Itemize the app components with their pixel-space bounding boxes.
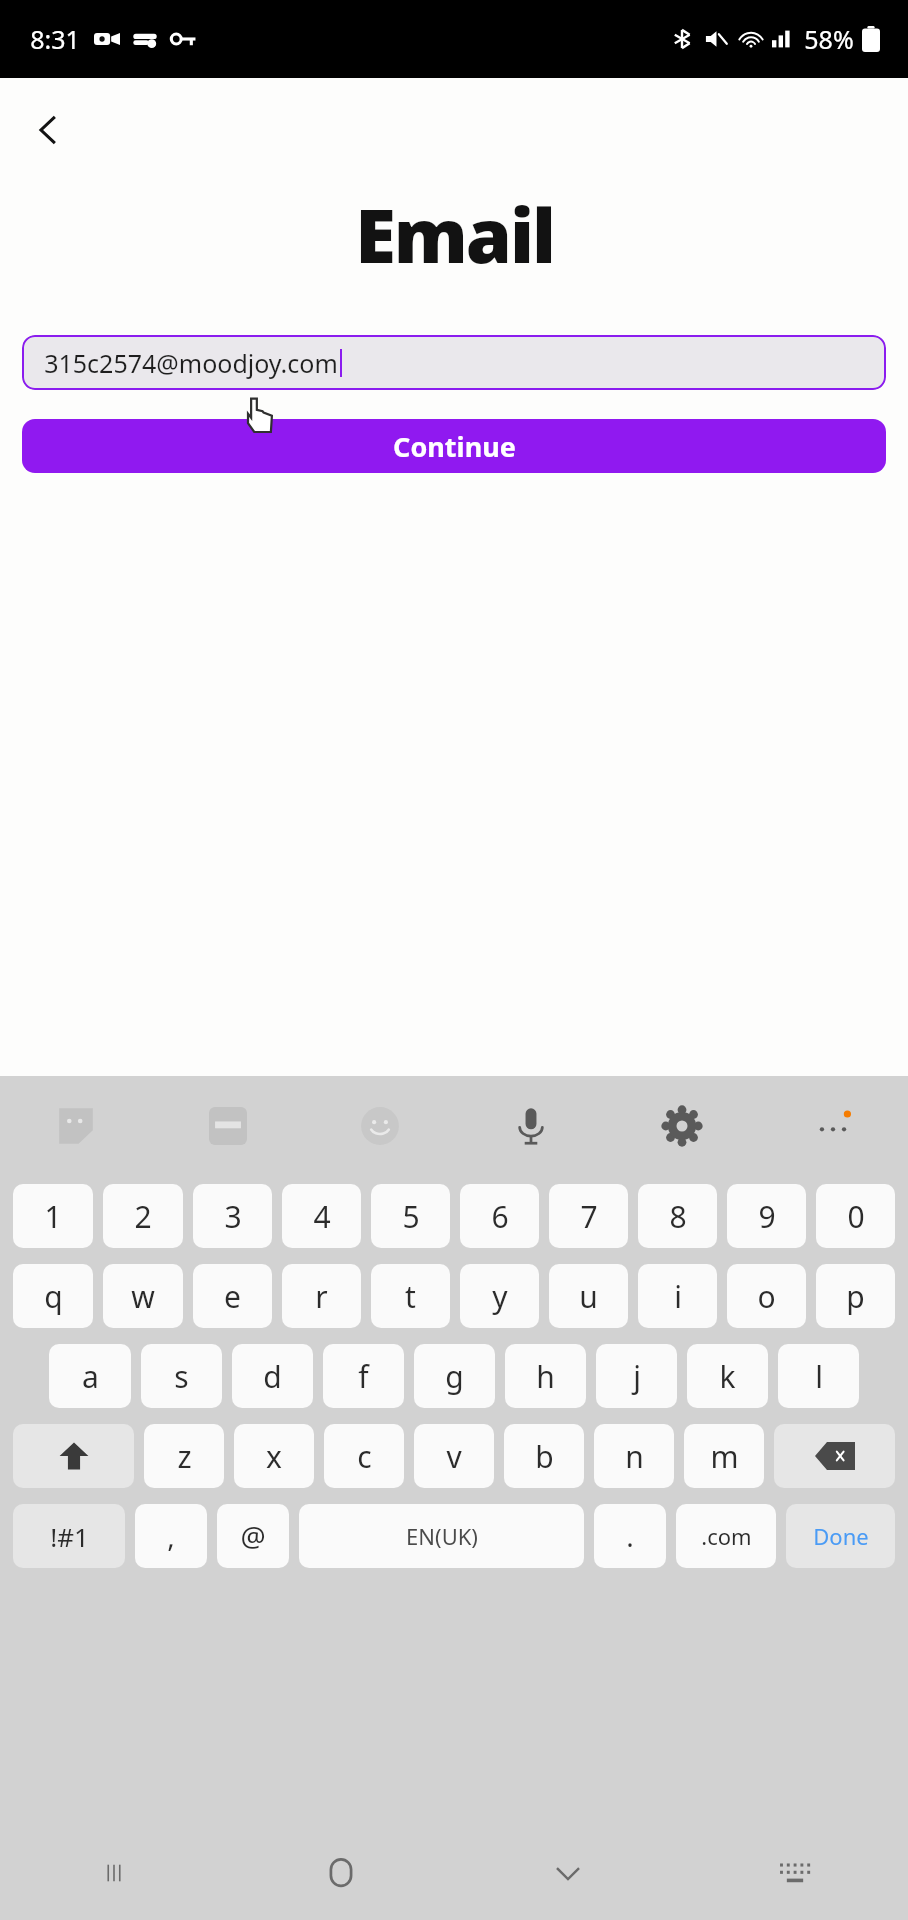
button[interactable]: , [135, 1504, 207, 1568]
staticText: 5 [402, 1196, 420, 1237]
staticText: @ [240, 1517, 266, 1555]
button[interactable]: Backspace [774, 1424, 895, 1488]
staticText: l [815, 1356, 823, 1397]
button[interactable]: j [596, 1344, 677, 1408]
staticText: 2 [134, 1196, 152, 1237]
button[interactable]: h [505, 1344, 586, 1408]
button[interactable]: 315c2574@moodjoy.com [22, 335, 886, 390]
staticText: 0 [847, 1196, 865, 1237]
button[interactable]: r [282, 1264, 361, 1328]
staticText: Continue [393, 428, 516, 465]
staticText: k [719, 1356, 736, 1397]
staticText: c [357, 1436, 372, 1477]
staticText: 58% [804, 22, 854, 56]
button[interactable]: 9 [727, 1184, 806, 1248]
staticText: n [625, 1436, 644, 1477]
staticText: v [446, 1436, 462, 1477]
staticText: z [177, 1436, 192, 1477]
staticText: 6 [491, 1196, 509, 1237]
staticText: 7 [580, 1196, 598, 1237]
button[interactable]: o [727, 1264, 806, 1328]
button[interactable]: 7 [549, 1184, 628, 1248]
staticText: u [579, 1276, 598, 1317]
button[interactable]: f [323, 1344, 404, 1408]
button[interactable]: GIF [152, 1076, 304, 1176]
button[interactable]: m [684, 1424, 764, 1488]
button[interactable]: EN(UK) [299, 1504, 584, 1568]
button[interactable]: Sticker [0, 1076, 152, 1176]
staticText: b [535, 1436, 554, 1477]
staticText: j [633, 1356, 641, 1397]
staticText: 4 [313, 1196, 331, 1237]
button[interactable]: @ [217, 1504, 289, 1568]
button[interactable]: Change keyboard [681, 1826, 908, 1920]
button[interactable]: k [687, 1344, 768, 1408]
button[interactable]: . [594, 1504, 666, 1568]
staticText: EN(UK) [406, 1521, 478, 1551]
button[interactable]: x [234, 1424, 314, 1488]
staticText: 8 [669, 1196, 687, 1237]
button[interactable]: l [778, 1344, 859, 1408]
button[interactable]: z [144, 1424, 224, 1488]
button[interactable]: 5 [371, 1184, 450, 1248]
staticText: f [358, 1356, 369, 1397]
staticText: m [710, 1436, 739, 1477]
button[interactable]: s [141, 1344, 222, 1408]
staticText: y [492, 1276, 508, 1317]
staticText: 8:31 [30, 22, 80, 56]
staticText: w [131, 1276, 155, 1317]
button[interactable]: n [594, 1424, 674, 1488]
button[interactable]: v [414, 1424, 494, 1488]
staticText: e [224, 1276, 241, 1317]
button[interactable]: d [232, 1344, 313, 1408]
staticText: 9 [758, 1196, 776, 1237]
button[interactable]: More options [757, 1076, 908, 1176]
staticText: Done [813, 1521, 869, 1551]
staticText: 1 [44, 1196, 62, 1237]
button[interactable]: g [414, 1344, 495, 1408]
button[interactable]: c [324, 1424, 404, 1488]
button[interactable]: .com [676, 1504, 776, 1568]
button[interactable]: e [193, 1264, 272, 1328]
staticText: , [167, 1517, 175, 1555]
button[interactable]: Recent apps [0, 1826, 227, 1920]
button[interactable]: !#1 [13, 1504, 125, 1568]
button[interactable]: u [549, 1264, 628, 1328]
staticText: !#1 [50, 1519, 89, 1554]
staticText: d [263, 1356, 282, 1397]
button[interactable]: Home [227, 1826, 454, 1920]
button[interactable]: 6 [460, 1184, 539, 1248]
staticText: p [846, 1276, 865, 1317]
button[interactable]: i [638, 1264, 717, 1328]
button[interactable]: 3 [193, 1184, 272, 1248]
button[interactable]: 1 [13, 1184, 93, 1248]
button[interactable]: t [371, 1264, 450, 1328]
staticText: g [445, 1356, 464, 1397]
button[interactable]: a [49, 1344, 131, 1408]
staticText: i [674, 1276, 682, 1317]
button[interactable]: Back [16, 98, 80, 162]
staticText: 315c2574@moodjoy.com [44, 346, 338, 380]
button[interactable]: 8 [638, 1184, 717, 1248]
button[interactable]: Hide keyboard [454, 1826, 681, 1920]
staticText: . [626, 1517, 634, 1555]
button[interactable]: 0 [816, 1184, 895, 1248]
button[interactable]: 4 [282, 1184, 361, 1248]
staticText: r [315, 1276, 328, 1317]
button[interactable]: Continue [22, 419, 886, 473]
button[interactable]: w [103, 1264, 183, 1328]
staticText: Email [355, 184, 554, 285]
button[interactable]: p [816, 1264, 895, 1328]
staticText: a [82, 1356, 99, 1397]
button[interactable]: 2 [103, 1184, 183, 1248]
button[interactable]: y [460, 1264, 539, 1328]
button[interactable]: Keyboard settings [606, 1076, 757, 1176]
staticText: h [536, 1356, 555, 1397]
button[interactable]: Voice input [455, 1076, 606, 1176]
button[interactable]: Done [786, 1504, 895, 1568]
button[interactable]: q [13, 1264, 93, 1328]
button[interactable]: Shift [13, 1424, 134, 1488]
staticText: .com [701, 1521, 752, 1551]
button[interactable]: b [504, 1424, 584, 1488]
